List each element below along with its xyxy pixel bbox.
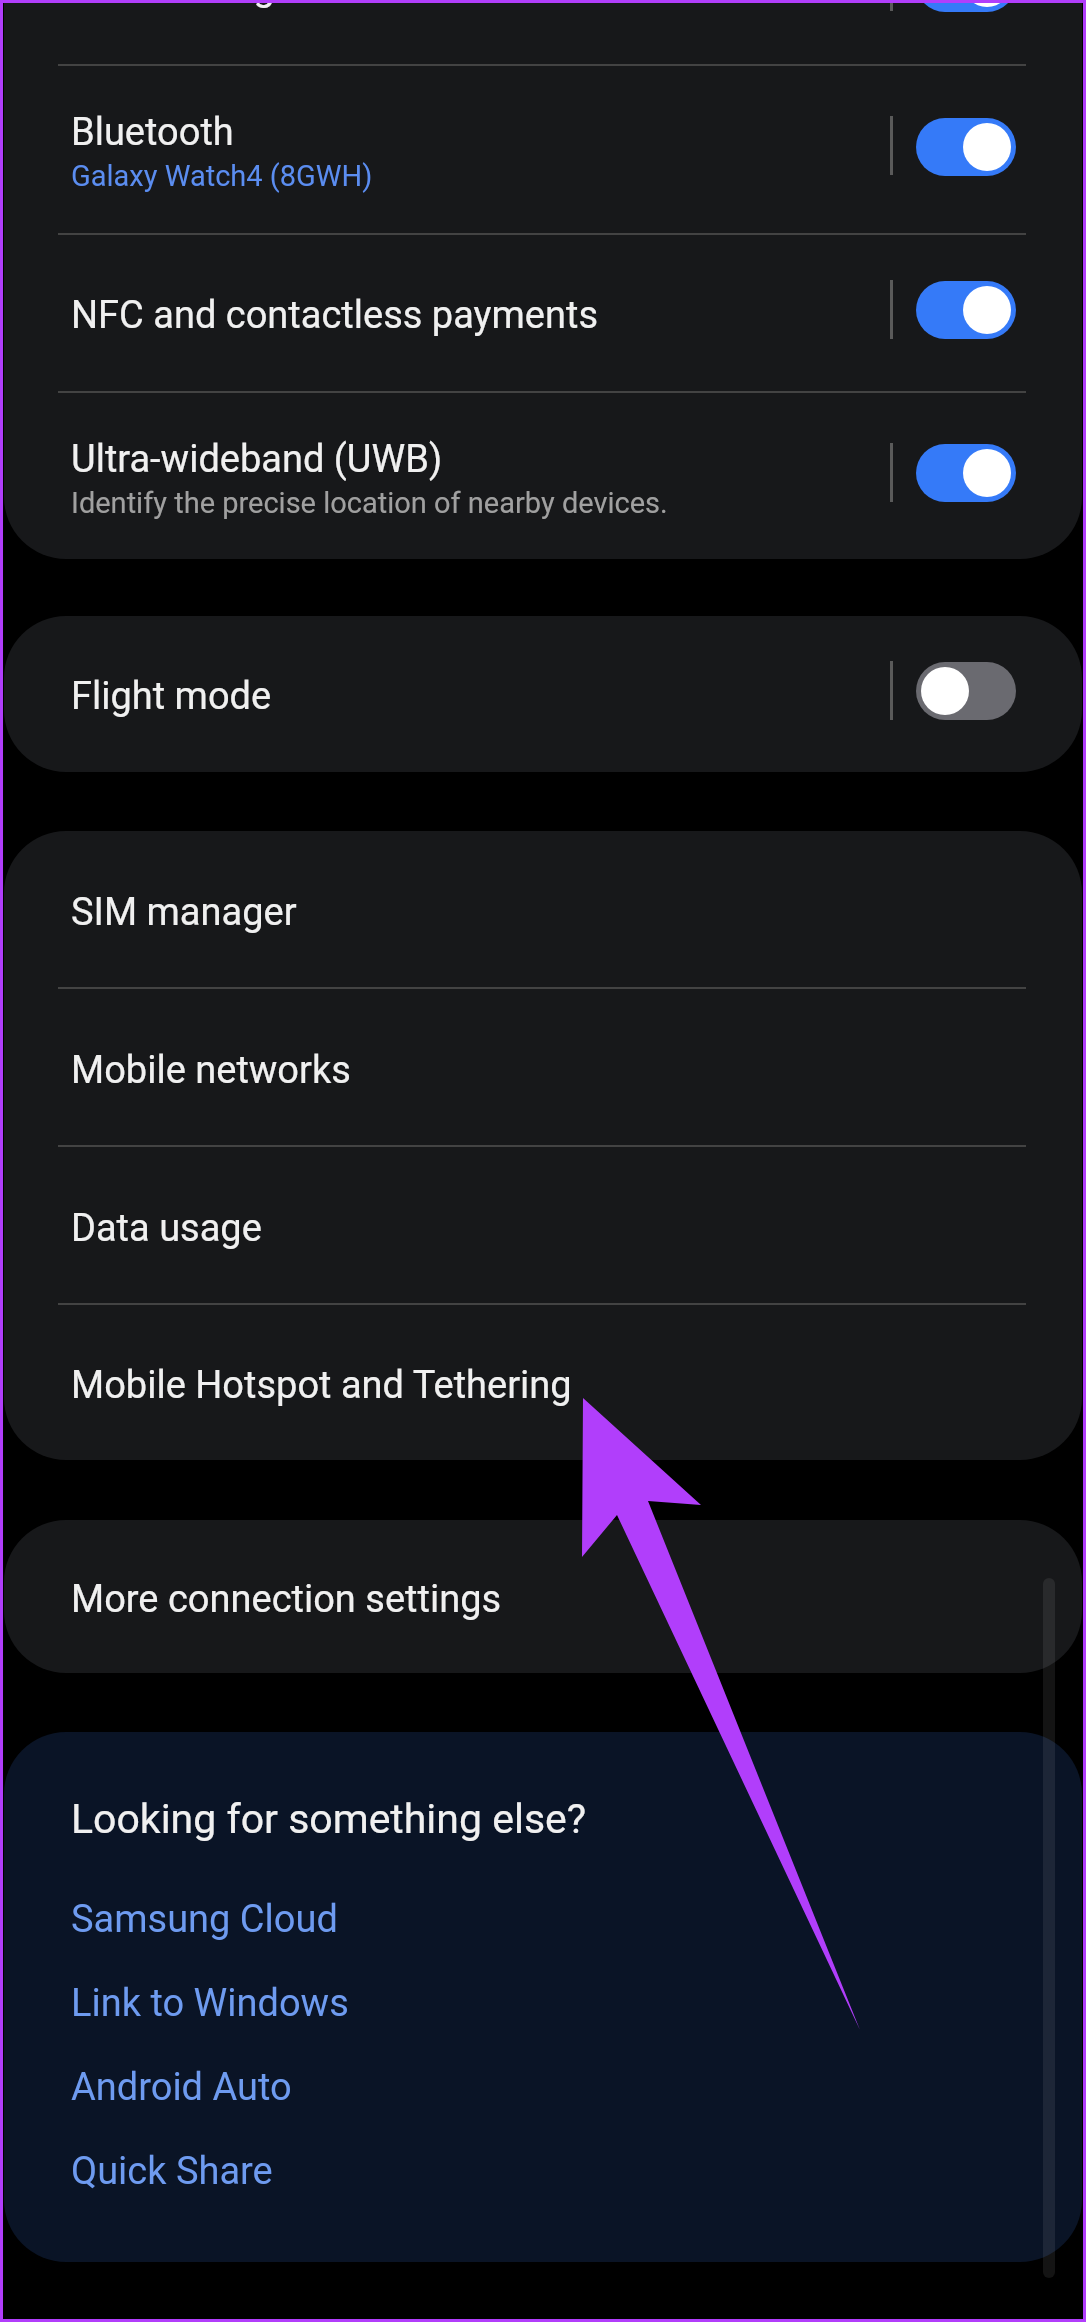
staticText: Looking for something else? bbox=[71, 1795, 587, 1843]
button[interactable]: NFC and contactless payments bbox=[4, 235, 1082, 391]
button[interactable]: Flight mode switch, off bbox=[916, 662, 1016, 720]
staticText: NFC and contactless payments bbox=[71, 293, 599, 338]
button[interactable]: Data usage bbox=[4, 1147, 1082, 1303]
staticText: Identify the precise location of nearby … bbox=[71, 486, 668, 520]
button[interactable]: NFC and contactless payments switch, on bbox=[916, 281, 1016, 339]
button[interactable]: Bluetooth switch, on bbox=[916, 118, 1016, 176]
staticText: Mobile networks bbox=[71, 1048, 351, 1093]
button[interactable]: Android Auto bbox=[4, 2045, 1082, 2129]
staticText: SIM manager bbox=[71, 890, 297, 935]
button[interactable]: Wi-Fi calling switch, on bbox=[916, 0, 1016, 12]
button[interactable]: Mobile networks bbox=[4, 989, 1082, 1145]
button[interactable]: Mobile Hotspot and Tethering bbox=[4, 1305, 1082, 1460]
button[interactable]: SIM manager bbox=[4, 831, 1082, 987]
staticText: Samsung Cloud bbox=[71, 1897, 338, 1942]
staticText: Galaxy Watch4 (8GWH) bbox=[71, 159, 373, 193]
button[interactable]: Flight mode bbox=[4, 616, 1082, 772]
staticText: Wi-Fi calling bbox=[71, 0, 275, 10]
staticText: More connection settings bbox=[71, 1577, 502, 1622]
button[interactable]: Ultra-wideband (UWB) bbox=[4, 393, 1082, 559]
button[interactable]: Wi-Fi calling bbox=[4, 0, 1082, 64]
button[interactable]: Ultra-wideband (UWB) switch, on bbox=[916, 444, 1016, 502]
button[interactable]: Link to Windows bbox=[4, 1961, 1082, 2045]
button[interactable]: Bluetooth bbox=[4, 66, 1082, 233]
button[interactable]: More connection settings bbox=[4, 1520, 1082, 1673]
staticText: Bluetooth bbox=[71, 110, 234, 155]
staticText: Android Auto bbox=[71, 2065, 292, 2110]
staticText: Link to Windows bbox=[71, 1981, 349, 2026]
staticText: Data usage bbox=[71, 1206, 262, 1251]
staticText: Quick Share bbox=[71, 2149, 273, 2194]
staticText: Flight mode bbox=[71, 674, 272, 719]
staticText: Mobile Hotspot and Tethering bbox=[71, 1363, 572, 1408]
button[interactable]: Quick Share bbox=[4, 2129, 1082, 2213]
staticText: Ultra-wideband (UWB) bbox=[71, 437, 443, 482]
button[interactable]: Samsung Cloud bbox=[4, 1877, 1082, 1961]
